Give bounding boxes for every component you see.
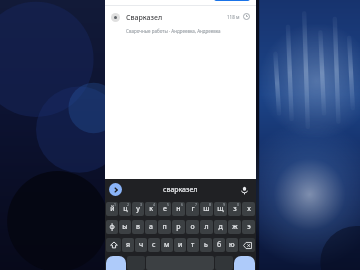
button[interactable]: й xyxy=(106,202,118,216)
staticText: у xyxy=(136,204,140,214)
staticText: й xyxy=(110,204,115,214)
button[interactable]: ы xyxy=(119,220,131,234)
staticText: р xyxy=(176,222,181,232)
staticText: г xyxy=(191,204,195,214)
button[interactable]: Expand suggestions xyxy=(109,183,122,196)
staticText: сварказел xyxy=(163,185,198,195)
button[interactable]: ф xyxy=(106,220,118,234)
staticText: в xyxy=(136,222,140,232)
staticText: 7 xyxy=(195,202,198,207)
staticText: б xyxy=(217,240,222,250)
button[interactable]: р xyxy=(172,220,185,234)
staticText: з xyxy=(233,204,237,214)
button[interactable]: п xyxy=(158,220,171,234)
staticText: ю xyxy=(229,240,235,250)
button[interactable]: т xyxy=(187,238,199,252)
staticText: ш xyxy=(203,204,210,214)
button[interactable]: ц xyxy=(119,202,131,216)
button[interactable]: щ xyxy=(214,202,227,216)
button[interactable]: л xyxy=(200,220,213,234)
button[interactable]: о xyxy=(186,220,199,234)
button[interactable]: я xyxy=(122,238,134,252)
staticText: а xyxy=(149,222,153,232)
staticText: 6 xyxy=(181,202,184,207)
staticText: я xyxy=(126,240,131,250)
button[interactable]: Сварказел xyxy=(105,6,256,42)
staticText: д xyxy=(218,222,223,232)
button[interactable]: э xyxy=(242,220,255,234)
button[interactable]: у xyxy=(132,202,144,216)
staticText: ь xyxy=(204,240,208,250)
staticText: с xyxy=(152,240,156,250)
staticText: э xyxy=(247,222,251,232)
button[interactable]: ш xyxy=(200,202,213,216)
button[interactable]: а xyxy=(145,220,157,234)
staticText: 0 xyxy=(237,202,240,207)
other: Opening hours xyxy=(243,13,250,20)
staticText: н xyxy=(176,204,181,214)
staticText: 2 xyxy=(127,202,130,207)
button[interactable]: з xyxy=(228,202,241,216)
button[interactable]: Search xyxy=(234,256,255,270)
staticText: 8 xyxy=(209,202,212,207)
button[interactable]: Shift xyxy=(106,238,121,252)
button[interactable]: е xyxy=(158,202,171,216)
staticText: Сварказел xyxy=(126,13,163,23)
staticText: 1 xyxy=(114,202,117,207)
button[interactable]: ь xyxy=(200,238,212,252)
staticText: к xyxy=(149,204,153,214)
staticText: е xyxy=(163,204,167,214)
button[interactable]: д xyxy=(214,220,227,234)
staticText: Сварочные работы · Андреевка, Андреевка xyxy=(126,28,221,34)
staticText: т xyxy=(191,240,195,250)
button[interactable]: с xyxy=(148,238,160,252)
button[interactable]: ю xyxy=(226,238,238,252)
button[interactable]: Symbols xyxy=(106,256,126,270)
button[interactable]: ч xyxy=(135,238,147,252)
staticText: и xyxy=(178,240,183,250)
staticText: м xyxy=(164,240,170,250)
button[interactable]: и xyxy=(174,238,186,252)
staticText: ж xyxy=(232,222,238,232)
staticText: щ xyxy=(217,204,224,214)
button[interactable]: г xyxy=(186,202,199,216)
staticText: 5 xyxy=(167,202,170,207)
staticText: ц xyxy=(123,204,128,214)
staticText: о xyxy=(190,222,195,232)
button[interactable] xyxy=(214,0,250,1)
staticText: ы xyxy=(122,222,128,232)
staticText: 3 xyxy=(140,202,143,207)
staticText: 9 xyxy=(223,202,226,207)
button[interactable]: х xyxy=(242,202,255,216)
staticText: ф xyxy=(109,222,115,232)
button[interactable]: н xyxy=(172,202,185,216)
button[interactable]: Backspace xyxy=(239,238,255,252)
staticText: ч xyxy=(139,240,144,250)
button[interactable]: м xyxy=(161,238,173,252)
staticText: л xyxy=(204,222,209,232)
button[interactable]: Voice input xyxy=(237,183,251,197)
button[interactable]: б xyxy=(213,238,225,252)
staticText: п xyxy=(162,222,167,232)
button[interactable]: ж xyxy=(228,220,241,234)
staticText: 118 м xyxy=(227,14,240,20)
button[interactable]: в xyxy=(132,220,144,234)
button[interactable]: к xyxy=(145,202,157,216)
staticText: 4 xyxy=(153,202,156,207)
staticText: х xyxy=(247,204,251,214)
